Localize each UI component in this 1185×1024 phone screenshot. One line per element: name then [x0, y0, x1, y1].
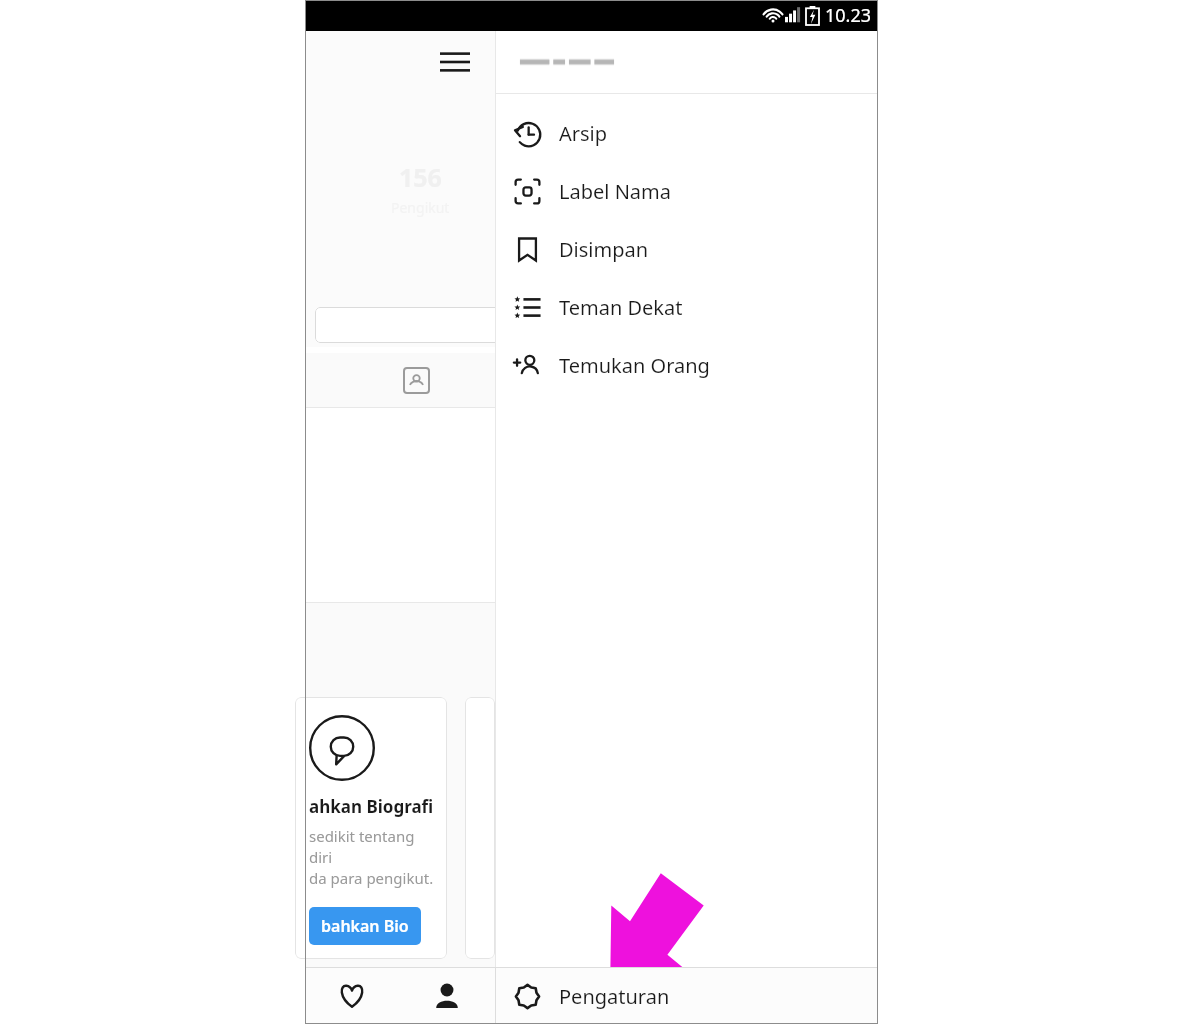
button[interactable]: bahkan Bio [309, 907, 421, 945]
button[interactable]: ahkan Biografi [295, 697, 447, 959]
button[interactable]: Activity [305, 968, 399, 1024]
staticText: ahkan Biografi [309, 795, 434, 818]
staticText: Pengaturan [559, 983, 670, 1010]
button[interactable]: Arsip [496, 104, 878, 162]
button[interactable]: Tagged [396, 360, 436, 400]
staticText: Disimpan [559, 236, 649, 263]
button[interactable]: Profile [399, 968, 495, 1024]
button[interactable]: Pengaturan [496, 968, 878, 1024]
staticText: bahkan Bio [321, 915, 409, 937]
button[interactable]: Menu [433, 40, 477, 84]
staticText: Arsip [559, 120, 608, 147]
staticText: 156 [399, 160, 442, 194]
button[interactable] [315, 307, 505, 343]
button[interactable]: Disimpan [496, 220, 878, 278]
button[interactable]: Label Nama [496, 162, 878, 220]
staticText: sedikit tentang diri da para pengikut. [309, 826, 439, 889]
staticText: Temukan Orang [559, 352, 710, 379]
staticText: Label Nama [559, 178, 671, 205]
staticText: 10.23 [825, 3, 872, 28]
button[interactable]: s [465, 697, 495, 959]
button[interactable]: Temukan Orang [496, 336, 878, 394]
button[interactable]: Teman Dekat [496, 278, 878, 336]
staticText: Teman Dekat [559, 294, 683, 321]
